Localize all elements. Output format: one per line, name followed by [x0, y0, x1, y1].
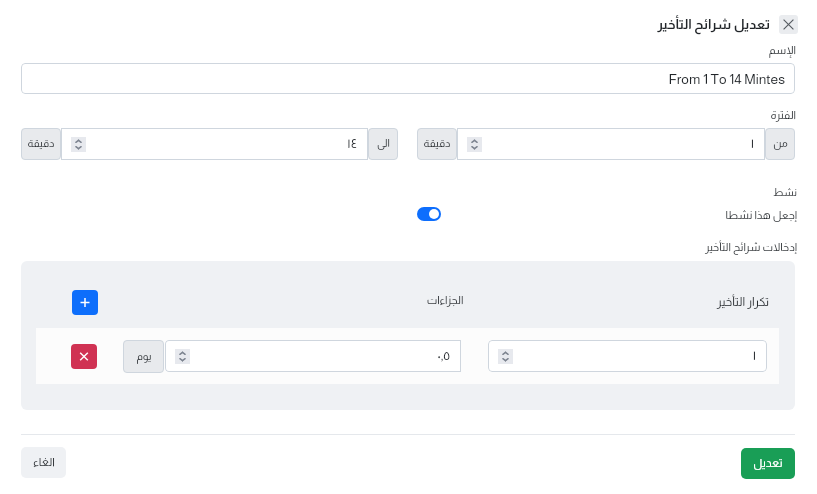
button[interactable]: Make active toggle	[417, 207, 441, 221]
staticText: تكرار التأخير	[683, 295, 795, 308]
button[interactable]: ١٤	[61, 128, 368, 160]
button[interactable]: يوم	[123, 340, 164, 373]
button[interactable]: Add row	[72, 290, 98, 315]
staticText: الجزاءات	[385, 294, 505, 306]
staticText: إدخالات شرائح التأخير	[477, 241, 797, 253]
staticText: ١	[488, 349, 756, 363]
staticText: دقيقة	[27, 137, 55, 149]
staticText: نشط	[477, 186, 797, 198]
button[interactable]: ١	[457, 128, 765, 160]
staticText: تعديل	[753, 457, 783, 470]
button[interactable]: Delete row	[71, 344, 97, 369]
staticText: تعديل شرائح التأخير	[470, 17, 770, 32]
button[interactable]: الغاء	[21, 447, 66, 478]
button[interactable]: من	[765, 128, 795, 160]
staticText: من	[773, 137, 788, 149]
staticText: الإسم	[476, 44, 796, 56]
staticText: يوم	[136, 350, 152, 362]
button[interactable]: From 1 To 14 Mintes	[21, 63, 795, 94]
button[interactable]: ٠,٥	[165, 340, 461, 372]
button[interactable]: الى	[368, 128, 398, 160]
button[interactable]: دقيقة	[21, 128, 61, 160]
button[interactable]: Close	[779, 15, 798, 34]
button[interactable]: دقيقة	[417, 128, 457, 160]
staticText: From 1 To 14 Mintes	[668, 71, 785, 87]
staticText: ١	[457, 137, 754, 151]
staticText: دقيقة	[423, 137, 451, 149]
staticText: إجعل هذا نشطا	[477, 209, 797, 221]
staticText: ١٤	[61, 137, 357, 151]
staticText: الفترة	[476, 109, 796, 121]
staticText: الغاء	[33, 456, 55, 469]
button[interactable]: ١	[488, 340, 767, 372]
staticText: ٠,٥	[165, 349, 450, 363]
staticText: الى	[377, 137, 390, 149]
button[interactable]: تعديل	[741, 448, 795, 479]
